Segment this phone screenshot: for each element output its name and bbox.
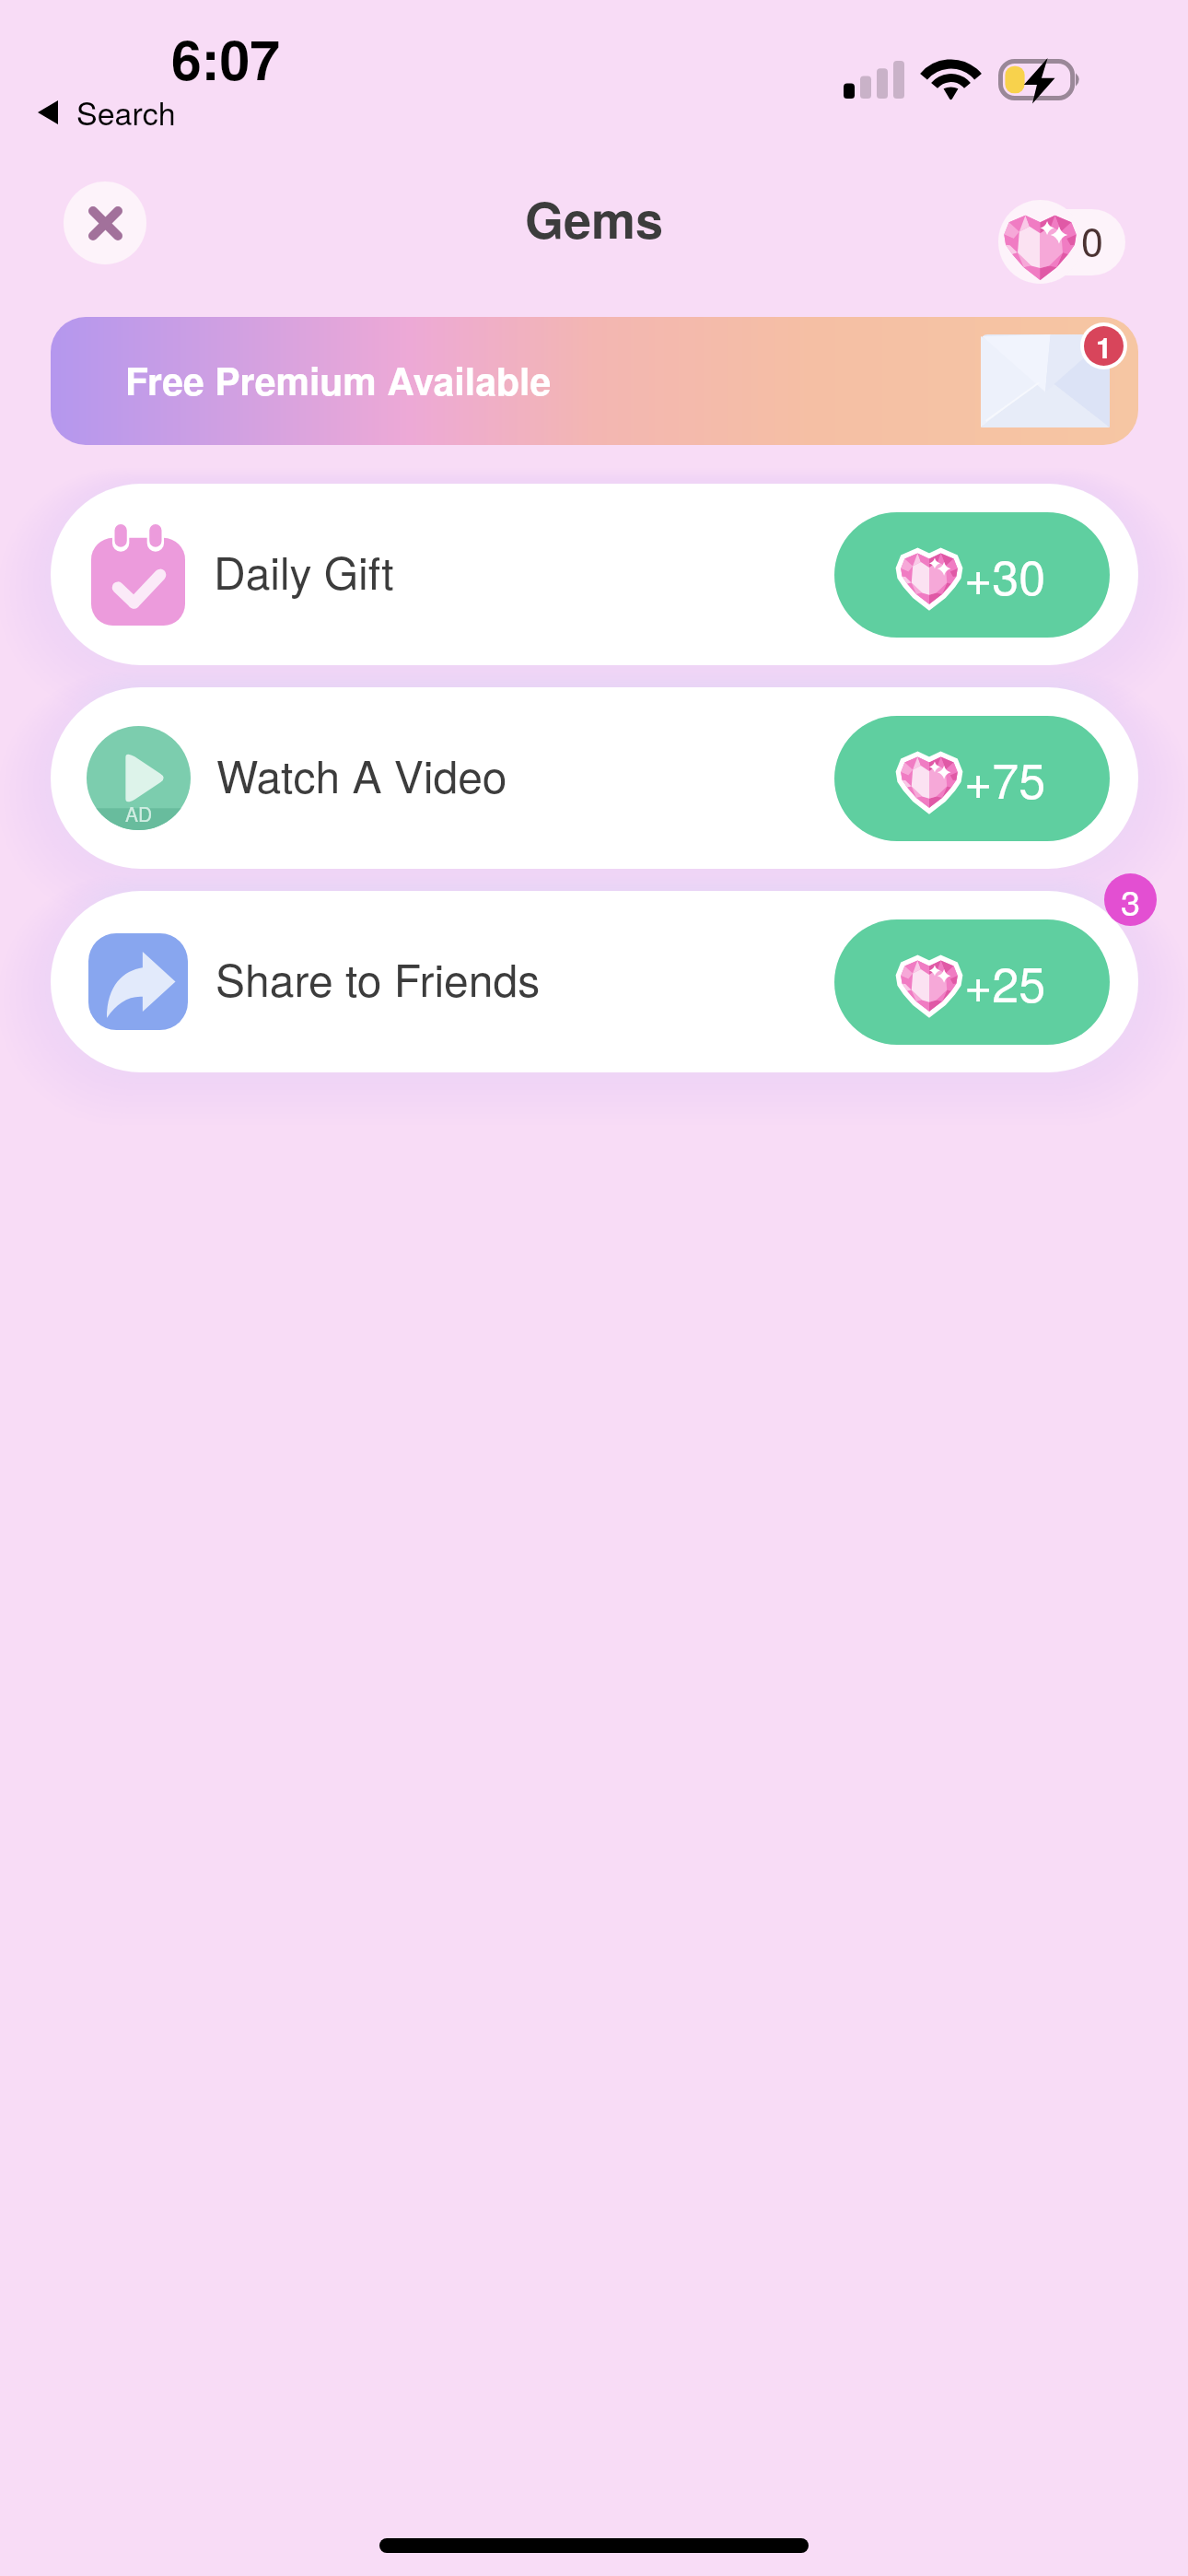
button[interactable]: Free Premium Available xyxy=(51,317,1138,445)
button[interactable]: Daily Gift xyxy=(51,484,1138,665)
staticText: 1 xyxy=(1096,326,1112,366)
staticText: Search xyxy=(76,89,176,135)
staticText: Daily Gift xyxy=(214,539,394,603)
staticText: Watch A Video xyxy=(216,743,507,806)
staticText: AD xyxy=(125,800,153,827)
staticText: 3 xyxy=(1121,875,1141,925)
button[interactable]: AD xyxy=(51,687,1138,869)
button[interactable]: Close xyxy=(64,181,146,264)
staticText: +25 xyxy=(964,947,1046,1015)
staticText: Gems xyxy=(0,182,1188,253)
button[interactable]: Share to Friends xyxy=(51,891,1138,1072)
staticText: +75 xyxy=(964,744,1046,812)
button[interactable]: Gem balance xyxy=(998,199,1125,284)
staticText: 6:07 xyxy=(171,19,281,97)
staticText: +30 xyxy=(964,540,1046,608)
staticText: 0 xyxy=(1081,211,1103,268)
staticText: Share to Friends xyxy=(215,946,541,1010)
staticText: Free Premium Available xyxy=(125,353,552,407)
